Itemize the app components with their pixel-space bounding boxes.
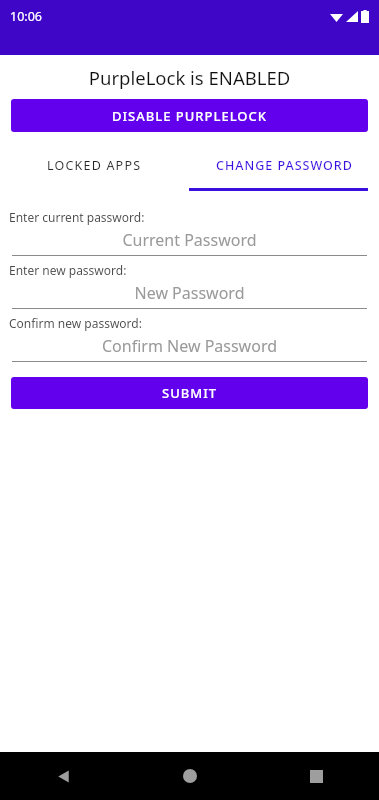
button[interactable]: LOCKED APPS: [0, 148, 189, 182]
button[interactable]: SUBMIT: [11, 377, 368, 409]
button[interactable]: CHANGE PASSWORD: [189, 148, 379, 182]
button[interactable]: Recent apps: [253, 752, 379, 800]
button[interactable]: DISABLE PURPLELOCK: [11, 99, 368, 132]
button[interactable]: Home: [127, 752, 253, 800]
staticText: Enter new password:: [9, 262, 127, 278]
button[interactable]: Back: [0, 752, 127, 800]
staticText: Confirm new password:: [9, 315, 142, 331]
staticText: New Password: [12, 282, 367, 304]
staticText: DISABLE PURPLELOCK: [112, 107, 268, 125]
staticText: Current Password: [12, 229, 367, 251]
staticText: 10:06: [10, 8, 42, 25]
staticText: Confirm New Password: [12, 335, 367, 357]
button[interactable]: Confirm New Password: [12, 335, 367, 362]
staticText: LOCKED APPS: [47, 157, 142, 174]
button[interactable]: New Password: [12, 282, 367, 309]
staticText: SUBMIT: [162, 384, 218, 402]
staticText: CHANGE PASSWORD: [216, 157, 353, 174]
button[interactable]: Current Password: [12, 229, 367, 256]
staticText: PurpleLock is ENABLED: [0, 65, 379, 90]
staticText: Enter current password:: [9, 209, 145, 225]
